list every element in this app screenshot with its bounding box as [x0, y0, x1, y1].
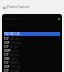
staticText: TCP [4, 61, 9, 65]
staticText: Packet Capture [7, 5, 30, 9]
staticText: 443 psh [10, 53, 20, 57]
staticText: TCP [4, 69, 9, 72]
staticText: TCP [4, 37, 9, 41]
button[interactable]: 192.168.1.24 [4, 32, 60, 36]
staticText: reply [11, 57, 18, 61]
staticText: DNS [4, 57, 10, 61]
staticText: UDP [4, 41, 10, 45]
staticText: wlan0 monitor [4, 17, 22, 21]
staticText: 123 ntp [11, 65, 21, 69]
staticText: 80 syn [10, 45, 18, 49]
button[interactable]: TCP [4, 61, 60, 65]
button[interactable]: UDP [4, 41, 60, 45]
staticText: 8080 fin [10, 61, 20, 65]
button[interactable]: DNS [4, 57, 60, 61]
staticText: ICMP [4, 49, 11, 53]
staticText: 443 ack [10, 37, 20, 41]
button[interactable]: TCP [4, 69, 60, 72]
button[interactable]: ICMP [4, 49, 60, 53]
button[interactable]: TCP [4, 37, 60, 41]
staticText: 53 query [11, 41, 22, 45]
staticText: echo [12, 49, 18, 53]
button[interactable]: TCP [4, 45, 60, 49]
staticText: TCP [4, 53, 9, 57]
staticText: TCP [4, 45, 9, 49]
staticText: 192.168.1.24 [4, 32, 20, 36]
button[interactable]: Back [2, 5, 7, 10]
staticText: 443 ack [10, 69, 20, 72]
staticText: UDP [4, 65, 10, 69]
button[interactable]: UDP [4, 65, 60, 69]
button[interactable]: TCP [4, 53, 60, 57]
